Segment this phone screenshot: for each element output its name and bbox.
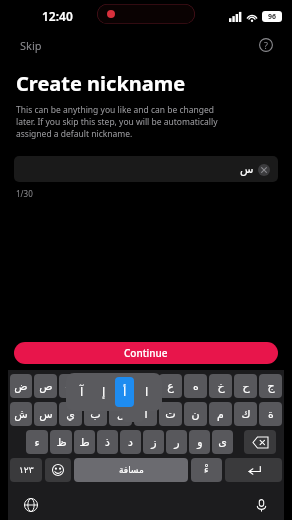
button[interactable]: Voice input — [250, 494, 272, 516]
staticText: This can be anything you like and can be… — [16, 104, 228, 140]
staticText: ش — [14, 408, 28, 421]
button[interactable]: ط — [74, 430, 95, 454]
button[interactable]: Enter — [225, 458, 282, 482]
button[interactable]: س — [14, 156, 278, 182]
button[interactable]: ة — [259, 402, 282, 426]
staticText: د — [128, 436, 133, 449]
staticText: م — [217, 408, 224, 421]
staticText: ض — [14, 380, 28, 393]
staticText: ج — [267, 380, 275, 393]
button[interactable]: خ — [209, 374, 232, 398]
button[interactable]: ا — [134, 402, 157, 426]
staticText: ? — [264, 39, 268, 51]
staticText: ك — [241, 408, 251, 421]
staticText: أ — [123, 385, 127, 399]
button[interactable]: ل — [109, 402, 132, 426]
staticText: ى — [218, 436, 227, 449]
staticText: ء — [34, 436, 40, 449]
staticText: 96 — [268, 12, 277, 22]
button[interactable]: و — [189, 430, 210, 454]
button[interactable]: مسافة — [74, 458, 188, 482]
staticText: ص — [39, 380, 53, 393]
button[interactable]: ث — [59, 374, 82, 398]
button[interactable]: ن — [184, 402, 207, 426]
button[interactable]: Backspace — [244, 430, 276, 454]
button[interactable]: ه — [184, 374, 207, 398]
staticText: ح — [242, 380, 250, 393]
button[interactable]: ك — [234, 402, 257, 426]
button[interactable]: Emoji — [45, 458, 71, 482]
button[interactable]: ق — [84, 374, 107, 398]
button[interactable]: Help — [256, 35, 276, 55]
button[interactable]: ص — [34, 374, 57, 398]
staticText: مسافة — [119, 465, 144, 475]
button[interactable]: س — [34, 402, 57, 426]
staticText: ع — [167, 380, 174, 393]
staticText: ة — [268, 408, 274, 421]
staticText: ن — [191, 408, 200, 421]
button[interactable]: ت — [159, 402, 182, 426]
button[interactable]: ب — [84, 402, 107, 426]
staticText: ل — [117, 408, 125, 421]
button[interactable]: ز — [143, 430, 164, 454]
staticText: ا — [145, 385, 149, 399]
button[interactable]: ا — [137, 377, 156, 407]
staticText: ا — [144, 408, 148, 421]
button[interactable]: أ — [115, 377, 134, 407]
button[interactable]: ظ — [50, 430, 72, 454]
button[interactable]: ش — [10, 402, 32, 426]
staticText: ز — [151, 436, 157, 449]
staticText: 1/30 — [16, 188, 33, 199]
button[interactable]: ي — [59, 402, 82, 426]
button[interactable]: Clear text — [258, 164, 270, 176]
button[interactable]: م — [209, 402, 232, 426]
button[interactable]: ح — [234, 374, 257, 398]
staticText: س — [240, 163, 254, 176]
staticText: Create nickname — [16, 70, 186, 97]
staticText: خ — [217, 380, 225, 393]
staticText: غ — [142, 380, 149, 393]
button[interactable]: غ — [134, 374, 157, 398]
staticText: 12:40 — [42, 8, 73, 24]
button[interactable]: إ — [94, 377, 113, 407]
staticText: ١٢٣ — [19, 465, 34, 475]
button[interactable]: Change language — [20, 494, 42, 516]
button[interactable]: د — [120, 430, 141, 454]
staticText: Continue — [124, 346, 168, 360]
button[interactable]: ءْ — [191, 458, 222, 482]
button[interactable]: آ — [72, 377, 91, 407]
button[interactable]: ف — [109, 374, 132, 398]
staticText: آ — [80, 385, 84, 399]
staticText: ب — [90, 408, 101, 421]
button[interactable]: Continue — [14, 342, 278, 364]
staticText: ر — [174, 436, 180, 449]
button[interactable]: ر — [166, 430, 187, 454]
staticText: ي — [66, 408, 75, 421]
button[interactable]: ج — [259, 374, 282, 398]
button[interactable]: ذ — [97, 430, 118, 454]
staticText: ه — [193, 380, 199, 393]
staticText: ذ — [105, 436, 110, 449]
staticText: ظ — [56, 436, 67, 449]
staticText: ت — [165, 408, 176, 421]
button[interactable]: ء — [26, 430, 48, 454]
button[interactable]: ى — [212, 430, 233, 454]
staticText: س — [39, 408, 53, 421]
staticText: و — [197, 436, 203, 449]
button[interactable]: Skip — [16, 35, 46, 56]
button[interactable]: ض — [10, 374, 32, 398]
staticText: إ — [102, 385, 106, 399]
staticText: ط — [79, 436, 90, 449]
button[interactable]: ع — [159, 374, 182, 398]
staticText: Skip — [20, 38, 42, 53]
button[interactable]: ١٢٣ — [10, 458, 42, 482]
staticText: ف — [115, 380, 127, 393]
staticText: ءْ — [204, 464, 209, 476]
